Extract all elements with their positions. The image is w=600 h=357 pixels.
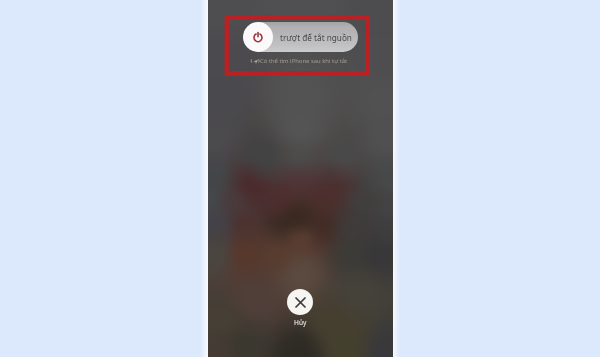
button[interactable]: trượt để tắt nguồn [243, 22, 358, 52]
staticText: trượt để tắt nguồn [280, 32, 352, 43]
other: Power [243, 22, 273, 52]
button[interactable]: Cancel [287, 289, 313, 315]
staticText: Hủy [294, 318, 307, 327]
staticText: Có thể tìm iPhone sau khi tự tắt [260, 57, 348, 65]
